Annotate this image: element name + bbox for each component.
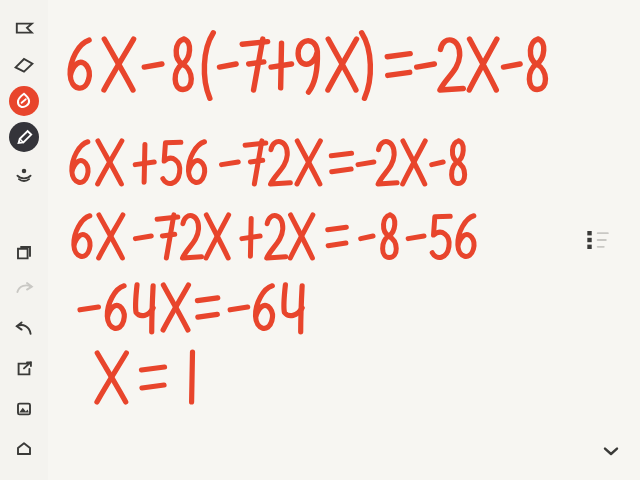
button[interactable]: Select (9, 14, 39, 44)
button[interactable]: Eraser (9, 50, 39, 80)
button[interactable]: Collapse (596, 436, 626, 466)
button[interactable]: Duplicate (9, 238, 39, 268)
button[interactable]: Ink options (9, 160, 39, 190)
button[interactable]: Share (9, 354, 39, 384)
button[interactable]: Insert image (9, 394, 39, 424)
button[interactable]: Pencil (9, 122, 39, 152)
button[interactable]: Redo (9, 274, 39, 304)
button[interactable]: Undo (9, 314, 39, 344)
button[interactable]: Pen (9, 86, 39, 116)
button[interactable]: List options (580, 223, 614, 257)
button[interactable]: Home (9, 434, 39, 464)
